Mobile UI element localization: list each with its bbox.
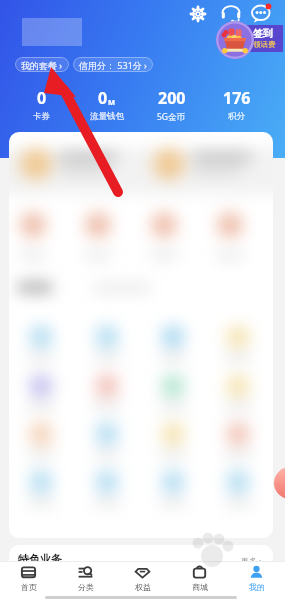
staticText: 5G金币 xyxy=(157,111,186,123)
staticText: 176 xyxy=(223,87,251,109)
staticText: 流量钱包 xyxy=(90,111,124,122)
button[interactable]: 商城 xyxy=(171,562,228,595)
button[interactable]: Customer service xyxy=(220,3,242,25)
button[interactable]: Daily check-in xyxy=(216,21,254,59)
button[interactable]: Messages xyxy=(250,2,272,24)
button[interactable]: 信用分： 531分 › xyxy=(73,57,153,72)
staticText: 领话费 xyxy=(253,40,276,49)
button[interactable]: 我的套餐 › xyxy=(15,57,69,72)
button[interactable]: 分类 xyxy=(57,562,114,595)
button[interactable]: 签到 xyxy=(228,25,283,52)
button[interactable]: 0 xyxy=(9,87,74,122)
staticText: 信用分： 531分 › xyxy=(79,59,147,71)
staticText: 卡券 xyxy=(33,111,50,122)
staticText: 0 xyxy=(37,87,47,109)
staticText: 商城 xyxy=(192,582,208,592)
button[interactable]: 权益 xyxy=(114,562,171,595)
button[interactable]: 176 xyxy=(204,87,269,122)
staticText: 200 xyxy=(158,87,186,109)
button[interactable]: 首页 xyxy=(0,562,57,595)
button[interactable]: 我的 xyxy=(228,562,285,595)
staticText: 首页 xyxy=(21,582,37,592)
button[interactable]: 0 xyxy=(74,87,139,122)
staticText: 0 xyxy=(98,87,108,109)
staticText: 我的套餐 › xyxy=(21,59,63,71)
button[interactable]: Settings xyxy=(187,3,209,25)
staticText: 权益 xyxy=(135,582,151,592)
button[interactable]: 200 xyxy=(139,87,204,123)
staticText: 更多 › xyxy=(241,555,262,566)
staticText: 分类 xyxy=(78,582,94,592)
staticText: M xyxy=(108,97,116,107)
staticText: 积分 xyxy=(228,111,245,122)
staticText: 我的 xyxy=(249,582,265,592)
staticText: 特色业务 xyxy=(18,552,62,566)
staticText: 签到 xyxy=(253,27,273,40)
button[interactable]: Assistant xyxy=(274,467,285,499)
